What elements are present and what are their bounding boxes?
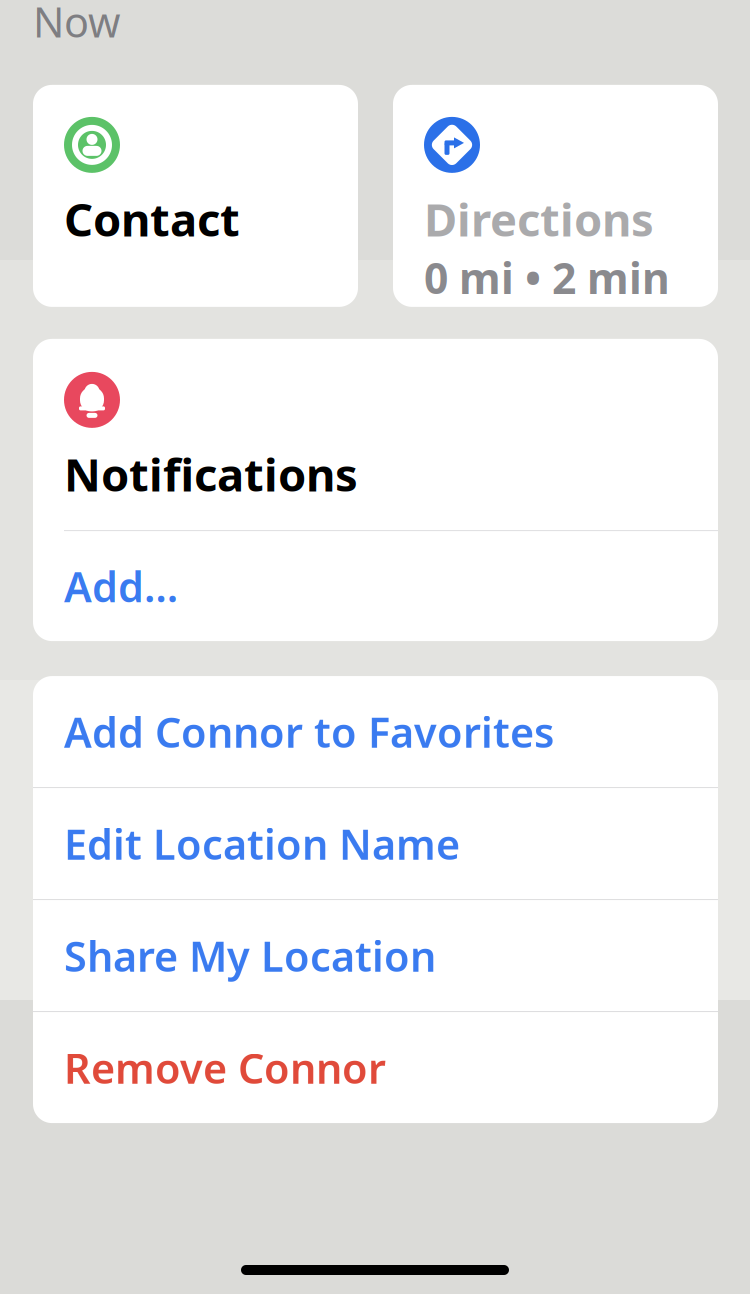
staticText: Notifications: [64, 444, 358, 504]
button[interactable]: Share My Location: [33, 900, 718, 1011]
staticText: 0 mi • 2 min: [424, 249, 670, 306]
button[interactable]: Edit Location Name: [33, 788, 718, 899]
staticText: Directions: [424, 189, 654, 249]
button[interactable]: Add Connor to Favorites: [33, 676, 718, 787]
staticText: Add…: [64, 559, 178, 613]
button[interactable]: Directions: [393, 85, 718, 307]
staticText: Edit Location Name: [64, 816, 460, 871]
button[interactable]: Add…: [33, 531, 718, 641]
staticText: Contact: [64, 189, 240, 249]
staticText: Add Connor to Favorites: [64, 704, 554, 759]
staticText: Now: [33, 0, 120, 49]
staticText: Remove Connor: [64, 1040, 386, 1095]
button[interactable]: Contact: [33, 85, 358, 307]
staticText: Share My Location: [64, 928, 436, 983]
button[interactable]: Remove Connor: [33, 1012, 718, 1123]
